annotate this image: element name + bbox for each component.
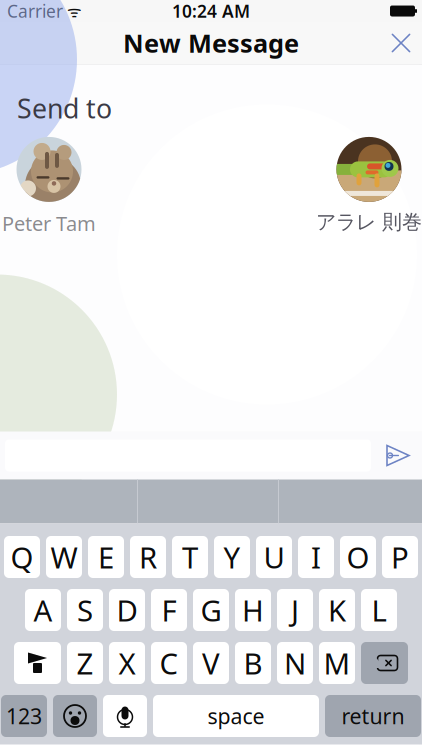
- button[interactable]: return: [325, 695, 421, 737]
- button[interactable]: C: [151, 642, 187, 684]
- staticText: I: [311, 537, 321, 576]
- button[interactable]: Dictation: [103, 695, 147, 737]
- staticText: S: [77, 590, 93, 629]
- button[interactable]: I: [298, 536, 334, 578]
- button[interactable]: J: [277, 589, 313, 631]
- button[interactable]: U: [256, 536, 292, 578]
- staticText: Peter Tam: [2, 210, 96, 236]
- button[interactable]: Prediction one: [0, 479, 137, 523]
- staticText: B: [243, 643, 262, 682]
- button[interactable]: X: [109, 642, 145, 684]
- button[interactable]: Peter Tam: [0, 137, 129, 236]
- button[interactable]: T: [172, 536, 208, 578]
- staticText: Q: [10, 537, 33, 576]
- staticText: return: [341, 702, 404, 730]
- button[interactable]: Prediction three: [279, 479, 422, 523]
- button[interactable]: Prediction two: [138, 479, 278, 523]
- button[interactable]: Y: [214, 536, 250, 578]
- button[interactable]: A: [25, 589, 61, 631]
- staticText: K: [328, 590, 346, 629]
- staticText: R: [139, 537, 157, 576]
- button[interactable]: H: [235, 589, 271, 631]
- staticText: J: [291, 590, 299, 629]
- button[interactable]: K: [319, 589, 355, 631]
- staticText: V: [202, 643, 220, 682]
- staticText: Carrier: [7, 0, 63, 22]
- staticText: P: [391, 537, 409, 576]
- staticText: W: [50, 537, 77, 576]
- staticText: 123: [6, 702, 42, 730]
- staticText: E: [98, 537, 114, 576]
- staticText: U: [263, 537, 284, 576]
- staticText: A: [33, 590, 52, 629]
- staticText: Y: [223, 537, 240, 576]
- button[interactable]: D: [109, 589, 145, 631]
- staticText: X: [118, 643, 135, 682]
- button[interactable]: Close: [377, 22, 422, 64]
- staticText: O: [346, 537, 369, 576]
- button[interactable]: O: [340, 536, 376, 578]
- button[interactable]: アラレ 則巻: [289, 137, 422, 234]
- button[interactable]: Z: [67, 642, 103, 684]
- staticText: G: [200, 590, 221, 629]
- button[interactable]: R: [130, 536, 166, 578]
- button[interactable]: F: [151, 589, 187, 631]
- staticText: New Message: [123, 26, 299, 60]
- staticText: T: [182, 537, 198, 576]
- button[interactable]: Q: [4, 536, 40, 578]
- button[interactable]: Shift: [14, 642, 61, 684]
- button[interactable]: space: [153, 695, 319, 737]
- staticText: space: [207, 702, 264, 730]
- staticText: ᯤ: [63, 0, 82, 22]
- button[interactable]: Send: [371, 433, 422, 477]
- button[interactable]: W: [46, 536, 82, 578]
- button[interactable]: S: [67, 589, 103, 631]
- button[interactable]: B: [235, 642, 271, 684]
- staticText: F: [161, 590, 176, 629]
- staticText: N: [284, 643, 306, 682]
- staticText: L: [371, 590, 386, 629]
- button[interactable]: L: [361, 589, 397, 631]
- staticText: H: [242, 590, 264, 629]
- button[interactable]: Delete: [361, 642, 408, 684]
- button[interactable]: M: [319, 642, 355, 684]
- staticText: C: [159, 643, 178, 682]
- button[interactable]: E: [88, 536, 124, 578]
- staticText: アラレ 則巻: [316, 210, 422, 234]
- staticText: Send to: [17, 90, 112, 126]
- button[interactable]: N: [277, 642, 313, 684]
- staticText: 10:24 AM: [172, 0, 250, 22]
- staticText: Z: [76, 643, 93, 682]
- button[interactable]: 123: [1, 695, 47, 737]
- button[interactable]: P: [382, 536, 418, 578]
- button[interactable]: V: [193, 642, 229, 684]
- staticText: M: [323, 643, 350, 682]
- button[interactable]: Emoji: [53, 695, 97, 737]
- staticText: D: [116, 590, 137, 629]
- button[interactable]: G: [193, 589, 229, 631]
